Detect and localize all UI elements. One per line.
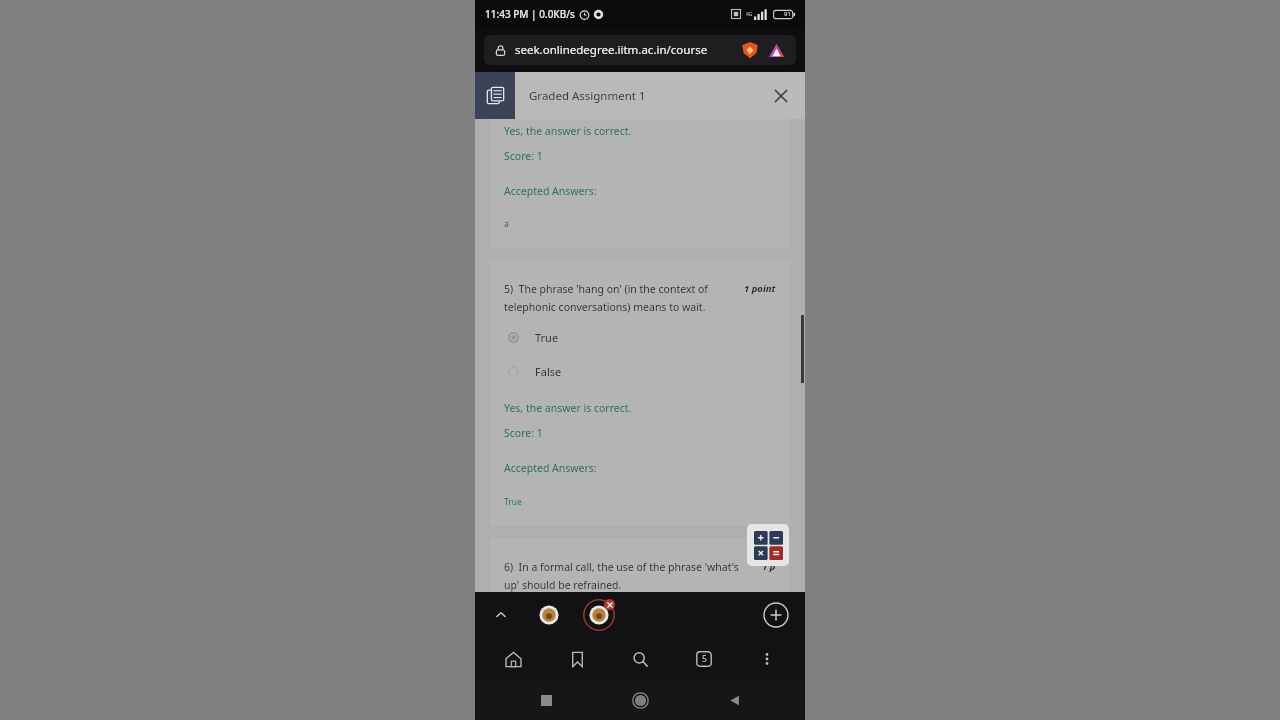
button[interactable]: False <box>504 364 776 379</box>
staticText: Graded Assignment 1 <box>529 88 767 104</box>
staticText: False <box>535 364 562 379</box>
staticText: Yes, the answer is correct. <box>504 401 632 415</box>
staticText: 91 <box>784 10 791 18</box>
staticText: True <box>504 496 522 508</box>
button[interactable]: Home <box>623 683 657 717</box>
button[interactable]: Course content <box>475 72 515 119</box>
button[interactable]: Calculator <box>747 524 789 566</box>
button[interactable]: Search <box>618 639 662 679</box>
button[interactable]: Back <box>717 683 751 717</box>
button[interactable]: Tabs <box>682 639 726 679</box>
staticText: Yes, the answer is correct. <box>504 124 632 138</box>
button[interactable]: New tab <box>761 600 791 630</box>
staticText: 4G <box>746 11 753 18</box>
staticText: Accepted Answers: <box>504 461 597 475</box>
staticText: Score: 1 <box>504 426 543 440</box>
staticText: seek.onlinedegree.iitm.ac.in/course <box>515 42 736 58</box>
button[interactable]: Rewards <box>766 40 786 60</box>
staticText: 6) In a formal call, the use of the phra… <box>504 560 754 592</box>
button[interactable]: seek.onlinedegree.iitm.ac.in/course <box>484 35 796 65</box>
staticText: Accepted Answers: <box>504 184 597 198</box>
button[interactable]: Current tab <box>583 599 615 631</box>
staticText: 11:43 PM | 0.0KB/s <box>485 7 575 21</box>
staticText: 5 <box>702 653 707 665</box>
button[interactable]: Expand tabs <box>489 603 513 627</box>
staticText: 1 point <box>744 282 776 295</box>
staticText: 5) The phrase 'hang on' (in the context … <box>504 282 736 314</box>
button[interactable]: Bookmarks <box>555 639 599 679</box>
button[interactable]: More options <box>745 639 789 679</box>
staticText: 1 p <box>762 560 776 573</box>
button[interactable]: True <box>504 330 776 345</box>
button[interactable]: Recent apps <box>529 683 563 717</box>
staticText: Score: 1 <box>504 149 543 163</box>
staticText: True <box>535 330 559 345</box>
button[interactable]: Close <box>767 82 795 110</box>
button[interactable]: Brave Shields <box>740 40 760 60</box>
button[interactable]: Home <box>491 639 535 679</box>
button[interactable]: Tab <box>533 599 565 631</box>
staticText: a <box>504 218 509 230</box>
